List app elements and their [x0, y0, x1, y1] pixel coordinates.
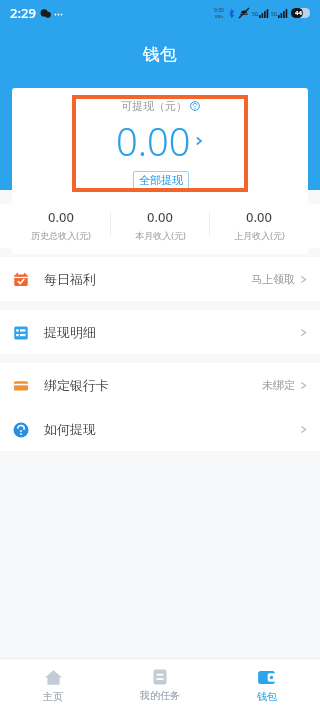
button[interactable]: 绑定银行卡 — [0, 363, 320, 407]
staticText: 未绑定 — [262, 378, 295, 392]
staticText: 钱包 — [257, 690, 277, 703]
staticText: 提现明细 — [44, 324, 96, 340]
button[interactable]: 可提现（元） — [72, 95, 248, 192]
staticText: 0.00 — [48, 208, 74, 226]
staticText: 如何提现 — [44, 421, 96, 437]
staticText: 我的任务 — [140, 689, 180, 702]
staticText: Top1 359308.94 — [213, 219, 295, 234]
staticText: ··· — [54, 6, 63, 21]
staticText: 钱包 — [143, 44, 177, 65]
staticText: 绑定银行卡 — [44, 377, 109, 393]
staticText: 0.00 — [116, 115, 191, 167]
staticText: 本月收入(元) — [135, 229, 186, 241]
staticText: 上月收入(元) — [234, 229, 285, 241]
staticText: 全部提现 — [139, 173, 183, 187]
staticText: KB/s — [215, 14, 224, 19]
staticText: 0.00 — [246, 208, 272, 226]
staticText: 5G — [252, 11, 259, 18]
button[interactable]: 如何提现 — [0, 407, 320, 451]
staticText: 5G — [271, 11, 278, 18]
staticText: 历史总收入(元) — [31, 229, 91, 241]
button[interactable]: 我的任务 — [106, 659, 213, 711]
button[interactable]: 每日福利 — [0, 257, 320, 301]
staticText: 主页 — [43, 690, 63, 703]
button[interactable]: 钱包 — [213, 659, 320, 711]
staticText: 0.00 — [147, 208, 173, 226]
staticText: 9.50 — [214, 7, 224, 14]
staticText: 可提现（元） — [121, 99, 187, 113]
staticText: 马上领取 — [251, 272, 295, 286]
staticText: 收入排行榜 — [44, 218, 109, 234]
button[interactable]: 提现明细 — [0, 310, 320, 354]
button[interactable]: 主页 — [0, 659, 106, 711]
staticText: 2:29 — [10, 4, 36, 22]
button[interactable]: 收入排行榜 — [0, 204, 320, 248]
staticText: 44 — [295, 9, 302, 17]
staticText: 每日福利 — [44, 271, 96, 287]
button[interactable]: 全部提现 — [133, 171, 189, 189]
